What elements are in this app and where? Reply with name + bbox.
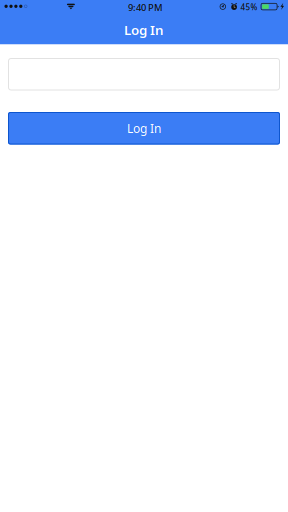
- staticText: 45%: [240, 2, 257, 12]
- staticText: 9:40 PM: [128, 1, 163, 14]
- button[interactable]: Log In: [8, 112, 280, 144]
- staticText: Log In: [127, 120, 161, 136]
- staticText: Log In: [124, 21, 164, 39]
